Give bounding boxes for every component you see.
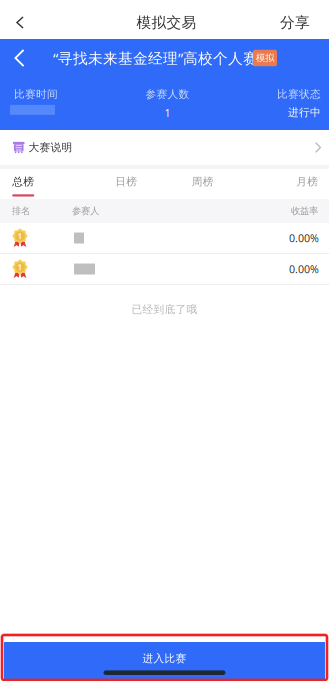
button[interactable]: 1 <box>0 223 329 253</box>
staticText: 进入比赛 <box>142 652 186 665</box>
staticText: 进行中 <box>288 106 321 119</box>
staticText: “寻找未来基金经理”高校个人赛 <box>53 48 258 68</box>
staticText: 月榜 <box>296 175 318 188</box>
staticText: 参赛人 <box>72 205 99 217</box>
staticText: 收益率 <box>291 205 318 217</box>
staticText: 0.00% <box>289 262 319 276</box>
button[interactable]: 分享 <box>270 6 329 39</box>
button[interactable]: 总榜 <box>1 169 45 199</box>
staticText: 模拟 <box>256 52 274 64</box>
button[interactable]: 日榜 <box>104 169 148 199</box>
staticText: 已经到底了哦 <box>131 303 197 316</box>
staticText: 参赛人数 <box>145 88 189 101</box>
button[interactable]: 进入比赛 <box>4 642 325 681</box>
staticText: 比赛状态 <box>277 88 321 101</box>
staticText: 1 <box>17 262 22 272</box>
button[interactable]: 月榜 <box>285 169 329 199</box>
staticText: 总榜 <box>12 175 34 188</box>
button[interactable]: 1 <box>0 254 329 284</box>
staticText: 周榜 <box>192 175 214 188</box>
staticText: 1 <box>164 106 170 120</box>
staticText: 大赛说明 <box>28 141 72 154</box>
button[interactable]: Back <box>0 6 40 39</box>
staticText: 排名 <box>12 205 30 217</box>
staticText: 日榜 <box>115 175 137 188</box>
staticText: 分享 <box>280 13 310 31</box>
staticText: 1 <box>17 231 22 241</box>
staticText: 比赛时间 <box>14 88 58 101</box>
staticText: 模拟交易 <box>136 13 196 31</box>
button[interactable]: 大赛说明 <box>0 130 329 165</box>
staticText: 0.00% <box>289 231 319 245</box>
button[interactable]: Back <box>0 39 39 77</box>
button[interactable]: 周榜 <box>181 169 225 199</box>
